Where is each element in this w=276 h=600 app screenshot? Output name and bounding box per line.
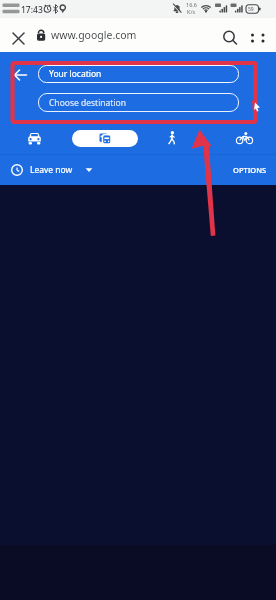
staticText: Choose destination bbox=[49, 97, 127, 109]
button[interactable] bbox=[6, 62, 34, 88]
staticText: Your location bbox=[49, 68, 102, 80]
button[interactable]: Leave now bbox=[11, 155, 93, 185]
button[interactable]: www.google.com bbox=[34, 18, 137, 52]
button[interactable]: Choose destination bbox=[38, 93, 239, 112]
button[interactable] bbox=[228, 125, 260, 151]
button[interactable] bbox=[158, 125, 186, 151]
staticText: 59 bbox=[248, 6, 254, 13]
staticText: K/s bbox=[187, 8, 196, 15]
staticText: Leave now bbox=[30, 164, 73, 176]
button[interactable] bbox=[8, 18, 30, 52]
button[interactable] bbox=[72, 130, 138, 147]
staticText: www.google.com bbox=[51, 28, 137, 42]
staticText: 16.6 bbox=[186, 1, 197, 8]
button[interactable]: OPTIONS bbox=[226, 155, 274, 185]
staticText: OPTIONS bbox=[233, 165, 267, 175]
button[interactable] bbox=[17, 125, 52, 151]
staticText: 17:43 bbox=[21, 4, 43, 16]
button[interactable] bbox=[218, 18, 242, 52]
button[interactable] bbox=[246, 18, 270, 52]
button[interactable]: Your location bbox=[38, 65, 239, 83]
